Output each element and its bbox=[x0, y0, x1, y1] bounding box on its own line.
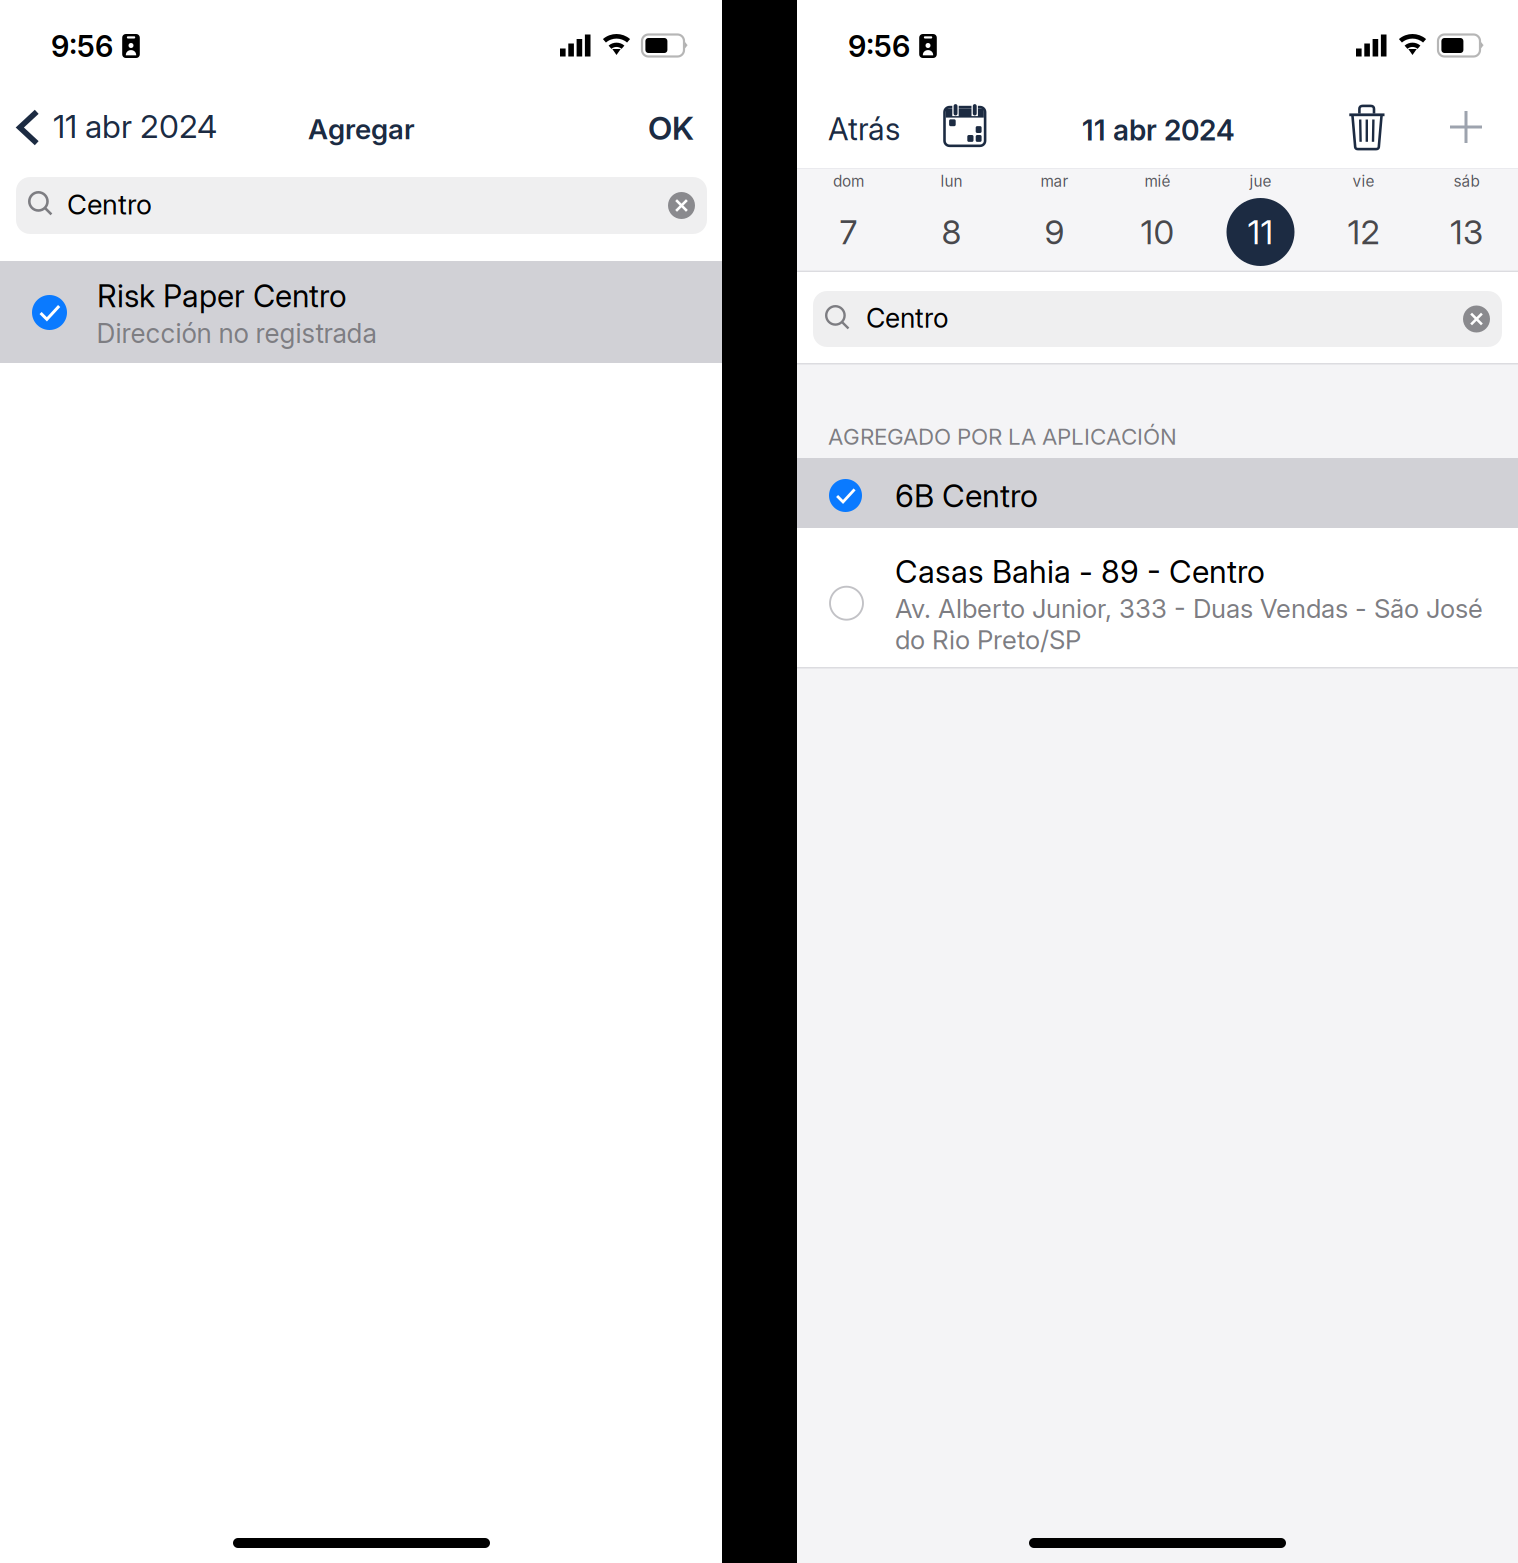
button[interactable]: Clear search bbox=[668, 192, 695, 219]
staticText: Centro bbox=[866, 302, 949, 334]
button[interactable]: Delete bbox=[1336, 96, 1398, 158]
staticText: 8 bbox=[941, 212, 961, 252]
staticText: OK bbox=[648, 109, 694, 147]
staticText: dom bbox=[833, 172, 864, 191]
staticText: sáb bbox=[1453, 172, 1479, 191]
staticText: 13 bbox=[1450, 212, 1483, 252]
button[interactable]: OK bbox=[625, 97, 717, 159]
staticText: 10 bbox=[1140, 212, 1174, 252]
staticText: AGREGADO POR LA APLICACIÓN bbox=[828, 423, 1177, 450]
button[interactable]: mié bbox=[1106, 168, 1209, 271]
staticText: Agregar bbox=[308, 112, 415, 146]
button[interactable]: dom bbox=[797, 168, 900, 271]
staticText: mar bbox=[1040, 172, 1068, 191]
staticText: Dirección no registrada bbox=[96, 317, 376, 349]
staticText: 11 abr 2024 bbox=[53, 107, 217, 146]
button[interactable]: Add bbox=[1435, 96, 1497, 158]
button[interactable]: lun bbox=[900, 168, 1003, 271]
button[interactable]: Risk Paper Centro bbox=[0, 261, 722, 363]
staticText: jue bbox=[1249, 172, 1271, 191]
button[interactable]: Atrás bbox=[804, 98, 924, 160]
staticText: 9:56 bbox=[51, 28, 113, 64]
staticText: Risk Paper Centro bbox=[97, 277, 347, 315]
button[interactable]: Casas Bahia - 89 - Centro bbox=[797, 528, 1518, 667]
staticText: 6B Centro bbox=[895, 477, 1038, 515]
staticText: 11 abr 2024 bbox=[1082, 113, 1235, 147]
staticText: 11 bbox=[1247, 212, 1273, 252]
staticText: 9:56 bbox=[848, 28, 910, 64]
staticText: vie bbox=[1352, 172, 1374, 191]
staticText: 7 bbox=[839, 212, 857, 252]
staticText: 12 bbox=[1347, 212, 1379, 252]
button[interactable]: 6B Centro bbox=[797, 458, 1518, 528]
button[interactable]: Calendar bbox=[934, 94, 996, 156]
button[interactable]: 11 abr 2024 bbox=[0, 97, 235, 159]
staticText: Centro bbox=[67, 188, 152, 221]
button[interactable]: jue bbox=[1209, 168, 1312, 271]
staticText: Atrás bbox=[828, 110, 900, 147]
button[interactable]: mar bbox=[1003, 168, 1106, 271]
staticText: Casas Bahia - 89 - Centro bbox=[895, 553, 1265, 591]
button[interactable]: sáb bbox=[1415, 168, 1518, 271]
staticText: 9 bbox=[1044, 212, 1064, 252]
button[interactable]: vie bbox=[1312, 168, 1415, 271]
staticText: mié bbox=[1144, 172, 1170, 191]
staticText: Av. Alberto Junior, 333 - Duas Vendas - … bbox=[895, 593, 1483, 656]
button[interactable]: Clear search bbox=[1463, 305, 1490, 332]
staticText: lun bbox=[940, 172, 962, 191]
